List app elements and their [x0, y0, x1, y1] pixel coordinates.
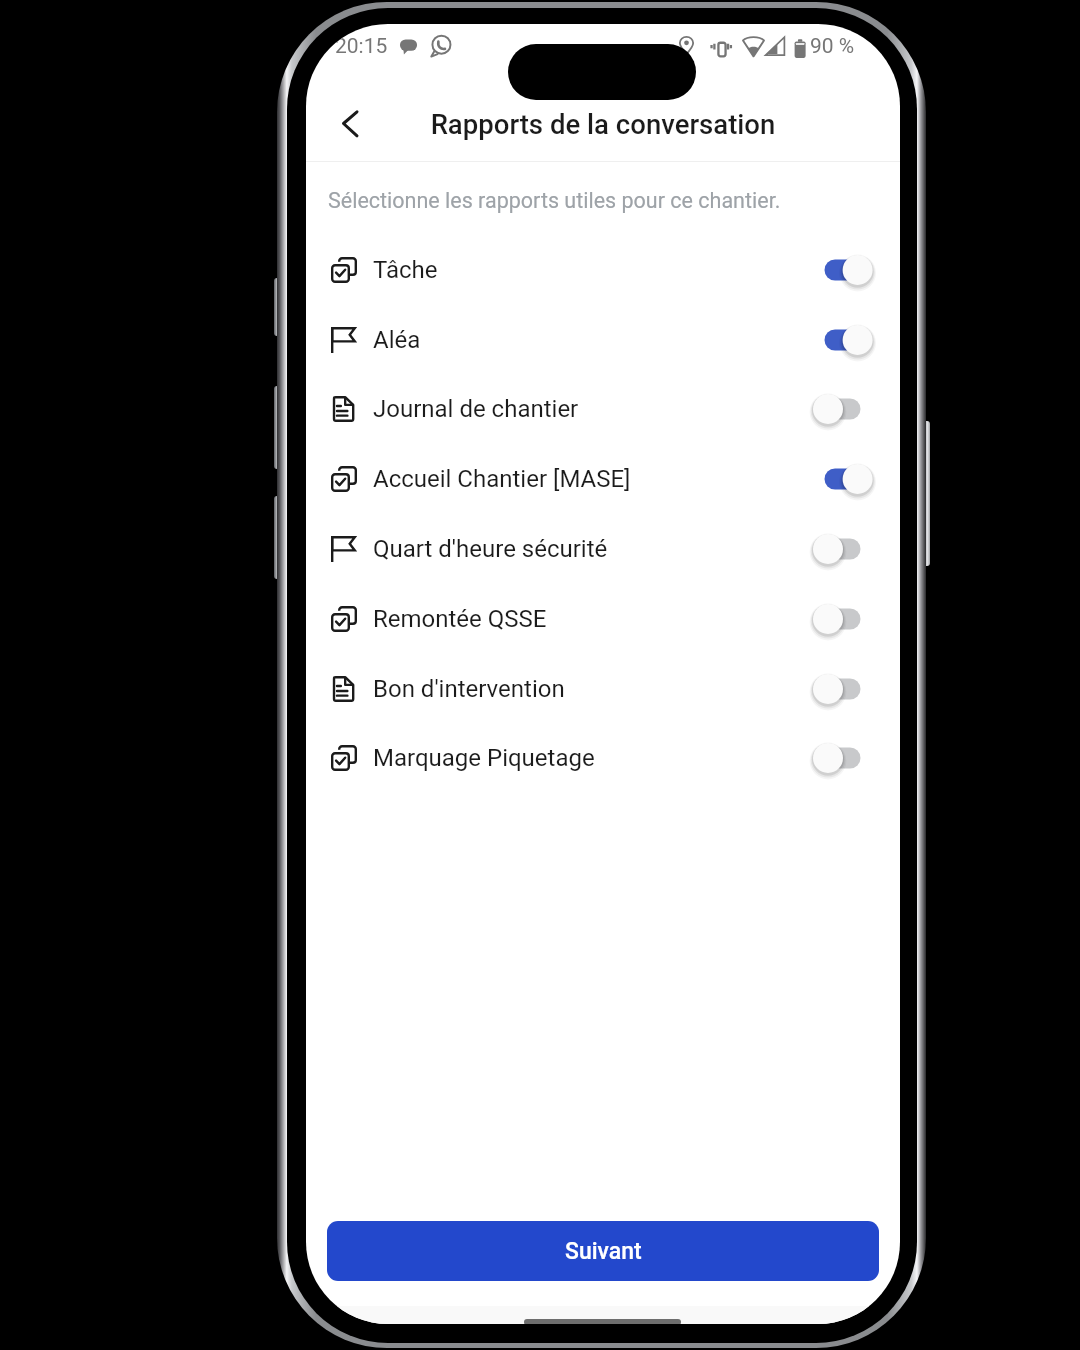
button[interactable]: Tâche [306, 235, 900, 305]
staticText: Quart d'heure sécurité [373, 535, 608, 563]
staticText: Suivant [565, 1238, 642, 1265]
staticText: Aléa [373, 326, 421, 354]
button[interactable]: Activé [813, 457, 873, 501]
button[interactable]: Activé [813, 248, 873, 292]
staticText: Marquage Piquetage [373, 744, 595, 772]
staticText: Sélectionne les rapports utiles pour ce … [328, 188, 781, 213]
staticText: Accueil Chantier [MASE] [373, 465, 631, 493]
button[interactable]: Remontée QSSE [306, 584, 900, 654]
staticText: Bon d'intervention [373, 675, 565, 703]
button[interactable]: Retour [326, 100, 374, 148]
button[interactable]: Marquage Piquetage [306, 723, 900, 793]
button[interactable]: Accueil Chantier [MASE] [306, 444, 900, 514]
button[interactable]: Bon d'intervention [306, 654, 900, 724]
button[interactable]: Désactivé [813, 387, 873, 431]
staticText: Journal de chantier [373, 395, 579, 423]
staticText: Tâche [373, 256, 438, 284]
staticText: 20:15 [335, 34, 388, 59]
button[interactable]: Activé [813, 318, 873, 362]
staticText: Remontée QSSE [373, 605, 547, 633]
button[interactable]: Désactivé [813, 527, 873, 571]
button[interactable]: Désactivé [813, 736, 873, 780]
staticText: 90 % [810, 34, 855, 59]
button[interactable]: Suivant [327, 1221, 879, 1281]
button[interactable]: Désactivé [813, 597, 873, 641]
staticText: Rapports de la conversation [306, 108, 900, 140]
button[interactable]: Désactivé [813, 667, 873, 711]
button[interactable]: Journal de chantier [306, 374, 900, 444]
button[interactable]: Aléa [306, 305, 900, 375]
button[interactable]: Quart d'heure sécurité [306, 514, 900, 584]
